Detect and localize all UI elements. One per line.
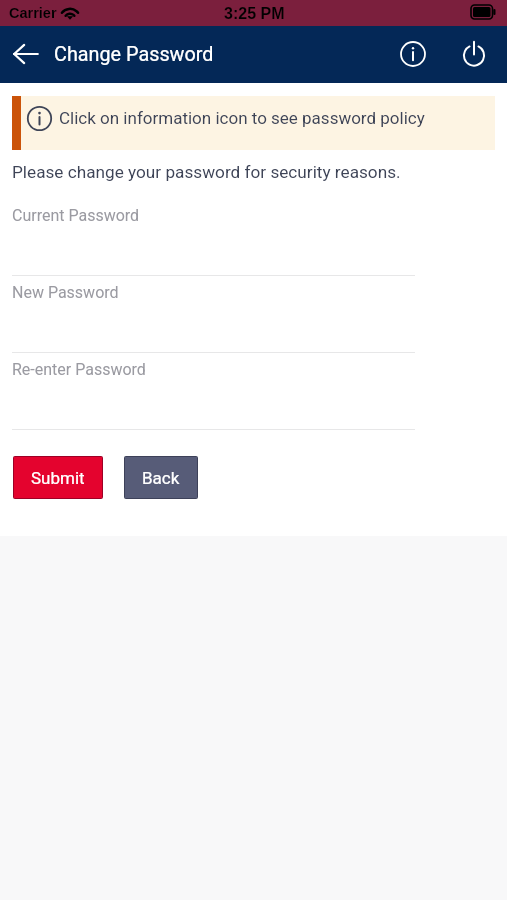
staticText: Change Password (54, 43, 214, 66)
staticText: Carrier (9, 5, 57, 21)
staticText: Current Password (12, 206, 140, 225)
staticText: Back (142, 468, 180, 488)
staticText: 3:25 PM (224, 5, 285, 23)
staticText: Please change your password for security… (12, 162, 401, 182)
staticText: Submit (31, 468, 85, 488)
staticText: Click on information icon to see passwor… (59, 108, 425, 128)
button[interactable]: Back (4, 32, 48, 76)
button[interactable]: Back (124, 456, 198, 499)
staticText: New Password (12, 283, 119, 302)
button[interactable]: Submit (13, 456, 103, 499)
button[interactable]: Information (391, 32, 435, 76)
staticText: Re-enter Password (12, 360, 146, 379)
button[interactable]: Log out (452, 32, 496, 76)
